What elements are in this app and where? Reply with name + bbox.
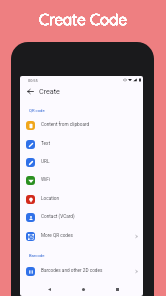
button[interactable]: Recent apps [111,283,123,295]
button[interactable]: More QR codes [20,227,143,245]
button[interactable]: URL [20,153,143,171]
staticText: URL [41,159,50,165]
staticText: More QR codes [41,233,73,239]
staticText: QR code [29,108,45,113]
staticText: Create Code [39,10,127,29]
button[interactable]: Contact (VCard) [20,208,143,226]
button[interactable]: Text [20,135,143,153]
button[interactable]: Back [43,283,55,295]
staticText: Create Code [39,10,127,29]
staticText: WiFi [41,177,51,183]
staticText: 00:55 [28,78,38,83]
button[interactable]: WiFi [20,171,143,189]
button[interactable]: Barcodes and other 2D codes [20,262,143,280]
staticText: Create Code [39,10,127,29]
staticText: Location [41,196,60,202]
button[interactable]: Content from clipboard [20,116,143,134]
button[interactable]: Home [77,283,89,295]
staticText: Create Code [39,10,127,29]
staticText: Text [41,141,50,147]
staticText: Contact (VCard) [41,214,75,220]
button[interactable]: Navigate up [23,84,37,98]
button[interactable]: Location [20,190,143,208]
staticText: Content from clipboard [41,122,90,128]
staticText: Barcodes and other 2D codes [41,268,103,274]
staticText: Barcode [29,253,45,258]
staticText: Create [39,87,60,95]
